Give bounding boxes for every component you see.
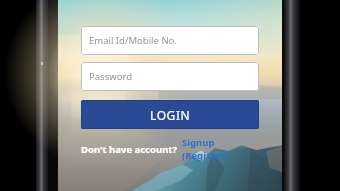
staticText: Password [89,70,132,83]
button[interactable]: Signup (Register) [182,136,259,162]
staticText: Email Id/Mobile No. [89,34,177,47]
button[interactable]: LOGIN [81,100,259,129]
staticText: LOGIN [150,107,191,123]
button[interactable]: Email Id or Mobile No. input [81,26,259,55]
staticText: Signup (Register) [182,136,259,162]
staticText: Don't have account? [81,143,177,156]
button[interactable]: Password input [81,62,259,91]
